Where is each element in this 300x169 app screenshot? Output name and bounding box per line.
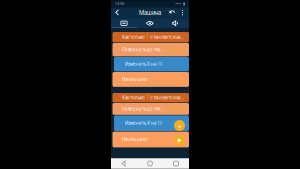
button[interactable]: Повернуть до тех пор, пока: [111, 103, 189, 115]
button[interactable]: More options: [178, 7, 187, 18]
button[interactable]: Изменить X на: [111, 57, 189, 72]
button[interactable]: Начать цикл: [111, 72, 189, 87]
staticText: становится активным: [150, 95, 185, 100]
button[interactable]: Undo: [167, 7, 178, 18]
button[interactable]: Home: [137, 158, 163, 169]
button[interactable]: Run: [173, 134, 186, 147]
button[interactable]: Повернуть до тех пор, пока: [111, 43, 189, 57]
staticText: становится активным: [150, 34, 185, 40]
staticText: Как только: [122, 34, 145, 40]
staticText: Повернуть до тех пор, пока: [122, 47, 165, 52]
staticText: Вперёд: [169, 47, 187, 52]
button[interactable]: Как только: [111, 32, 189, 43]
staticText: ▶: [177, 138, 181, 143]
staticText: 1: [147, 95, 149, 100]
button[interactable]: Изменить X на: [111, 115, 189, 132]
staticText: Повернуть до тех пор, пока: [122, 106, 165, 111]
button[interactable]: Back: [111, 158, 137, 169]
button[interactable]: Add block: [173, 119, 186, 132]
staticText: 10: [158, 61, 163, 67]
staticText: Машина: [139, 9, 161, 16]
button[interactable]: Как только: [111, 93, 189, 103]
button[interactable]: Начать цикл: [111, 132, 189, 148]
staticText: Изменить X на: [125, 61, 156, 67]
staticText: 14:05: [115, 1, 124, 6]
staticText: 10: [158, 120, 163, 126]
staticText: ••• ▮: [175, 1, 185, 6]
staticText: +: [177, 121, 181, 130]
button[interactable]: Preview: [137, 18, 163, 28]
button[interactable]: Sounds: [163, 18, 189, 28]
staticText: Начать цикл: [122, 77, 148, 82]
staticText: 1: [147, 34, 149, 40]
button[interactable]: Recents: [163, 158, 189, 169]
staticText: Вперёд: [169, 106, 187, 111]
staticText: Начать цикл: [122, 137, 148, 142]
staticText: Как только: [122, 95, 145, 100]
button[interactable]: Back: [113, 7, 122, 18]
staticText: Изменить X на: [125, 120, 156, 126]
button[interactable]: Scripts: [111, 18, 137, 28]
